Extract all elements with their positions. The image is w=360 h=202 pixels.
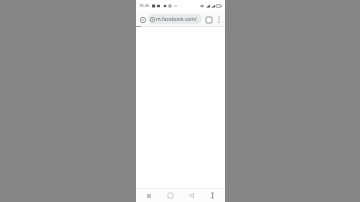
button[interactable]: m.facebook.com/frie <box>148 14 202 24</box>
button[interactable]: Home <box>162 189 178 202</box>
button[interactable]: Recent apps <box>141 189 157 202</box>
staticText: 10:26 <box>139 3 150 8</box>
button[interactable]: Keyboard <box>204 189 220 202</box>
button[interactable]: More options <box>214 15 223 24</box>
staticText: m.facebook.com/frie <box>156 16 200 23</box>
button[interactable]: Home <box>138 15 147 24</box>
button[interactable]: Back <box>183 189 199 202</box>
button[interactable]: Tabs <box>204 15 213 24</box>
